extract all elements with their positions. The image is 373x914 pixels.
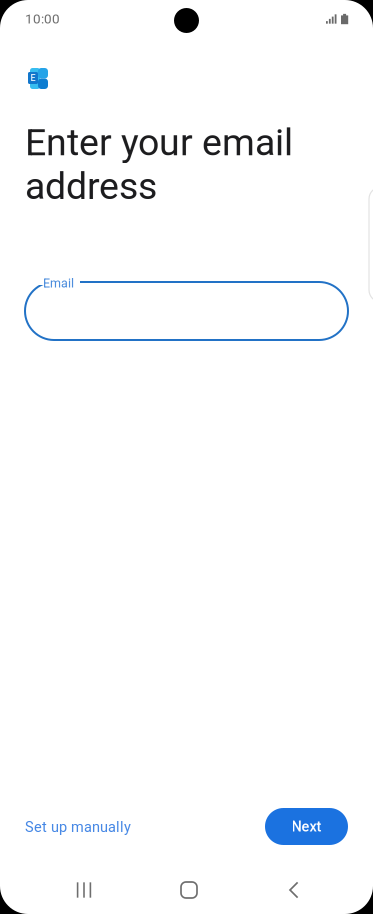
button[interactable]: Set up manually: [25, 808, 145, 846]
button[interactable]: Back: [254, 866, 334, 914]
button[interactable]: Recent apps: [44, 866, 124, 914]
staticText: 10:00: [25, 11, 60, 27]
staticText: Set up manually: [25, 818, 131, 835]
staticText: Email: [43, 276, 74, 291]
staticText: Enter your email address: [25, 120, 293, 208]
staticText: E: [30, 73, 35, 83]
button[interactable]: Next: [265, 808, 348, 845]
button[interactable]: Home: [149, 866, 229, 914]
staticText: Next: [291, 818, 321, 835]
